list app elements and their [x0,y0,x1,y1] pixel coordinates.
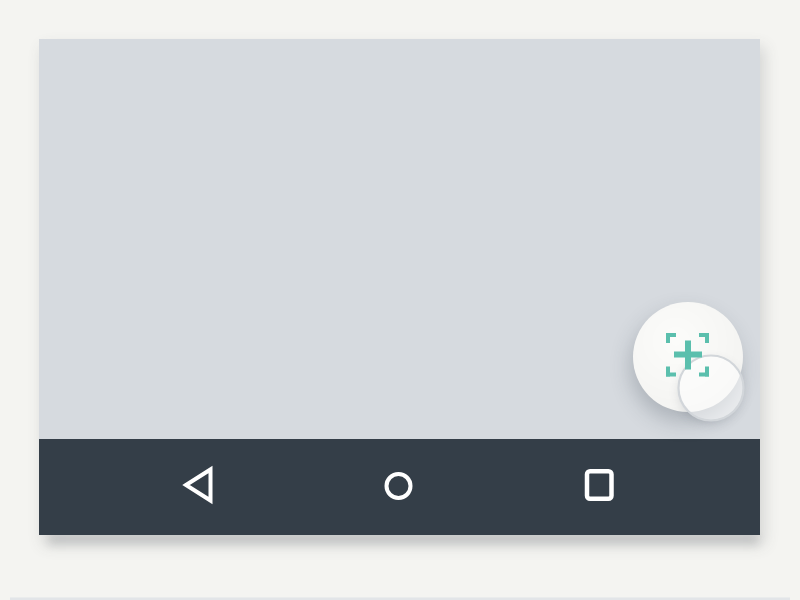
button[interactable] [633,302,743,412]
button[interactable] [170,455,230,515]
button[interactable] [369,457,429,517]
button[interactable] [569,455,629,515]
